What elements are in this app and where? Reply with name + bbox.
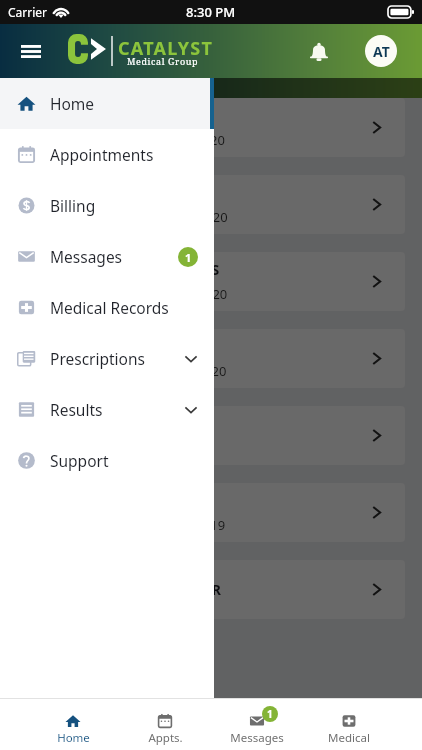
button[interactable]: ANNUAL PHYSICAL EXAM [15,483,405,542]
button[interactable]: Appointments [0,129,214,180]
button[interactable]: IMMUNIZATION REMINDER [15,560,405,619]
button[interactable]: PRESCRIPTION REFILL [15,329,405,388]
staticText: Released on Thurs, Feb 06, 2020 [31,285,228,303]
staticText: Scheduled for Wed, Mar 1, 2020 [31,131,225,149]
staticText: OFFICE VISIT SUMMARY [31,183,196,202]
button[interactable]: Messages [0,231,214,282]
staticText: Appts. [148,730,183,746]
staticText: Home [50,93,95,114]
button[interactable]: Results [0,384,214,435]
staticText: 1 [267,707,273,721]
button[interactable]: Medical Records [0,282,214,333]
staticText: Prescriptions [50,348,145,369]
staticText: Results [50,399,103,420]
staticText: Support [50,450,109,471]
staticText: Messages [230,730,284,746]
staticText: Completed on Thu, Feb 27, 2020 [31,208,228,226]
button[interactable]: Home [27,699,119,750]
button[interactable]: Billing [0,180,214,231]
button[interactable]: OFFICE VISIT SUMMARY [15,175,405,234]
staticText: Requested on Wed, Jan 22, 2020 [31,362,227,380]
button[interactable]: Home [0,78,214,129]
staticText: 1 [185,250,192,265]
staticText: IMMUNIZATION REMINDER [31,580,222,599]
staticText: PRESCRIPTION REFILL [31,337,183,356]
staticText: Medical Records [50,297,169,318]
button[interactable]: UPCOMING VISIT [15,98,405,157]
staticText: 8:30 PM [186,3,236,21]
staticText: UPCOMING VISIT [31,106,150,125]
staticText: Completed on Wed, Dec 8, 2019 [31,516,226,534]
button[interactable]: Appts. [119,699,211,750]
staticText: Carrier [8,4,48,20]
button[interactable]: Profile [365,35,397,67]
button[interactable]: Prescriptions [0,333,214,384]
staticText: Medical [328,730,370,746]
button[interactable]: Support [0,435,214,486]
button[interactable]: Notifications [299,31,339,71]
staticText: VISIT SUMMARY & RESULTS [31,260,220,279]
staticText: Billing [50,195,96,216]
button[interactable]: 1 [211,699,303,750]
staticText: Medical Group [127,55,199,67]
staticText: CATALYST [118,36,214,61]
button[interactable]: Medical [303,699,395,750]
staticText: Home [57,730,90,746]
staticText: Messages [50,246,123,267]
button[interactable]: Menu [11,31,51,71]
staticText: Appointments [50,144,154,165]
staticText: AT [373,42,390,61]
button[interactable]: VISIT SUMMARY & RESULTS [15,252,405,311]
button[interactable]: BILLING STATEMENT [15,406,405,465]
